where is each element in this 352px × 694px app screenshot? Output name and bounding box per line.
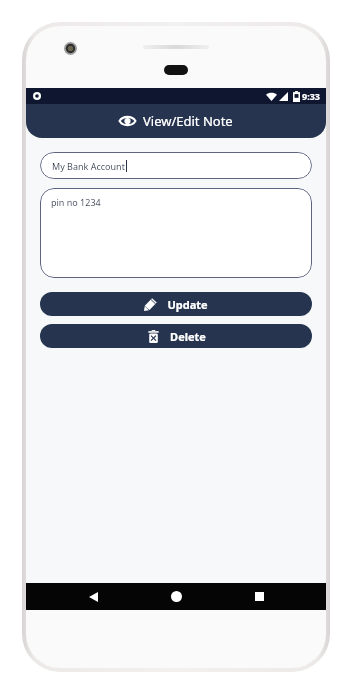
staticText: My Bank Account bbox=[52, 160, 125, 172]
staticText: View/Edit Note bbox=[143, 112, 233, 130]
staticText: Update bbox=[167, 297, 208, 312]
button[interactable]: Delete bbox=[40, 324, 312, 348]
staticText: pin no 1234 bbox=[51, 196, 101, 208]
staticText: 9:33 bbox=[302, 90, 320, 102]
button[interactable]: Home bbox=[160, 583, 192, 610]
staticText: Delete bbox=[170, 329, 206, 344]
button[interactable]: pin no 1234 bbox=[40, 188, 312, 278]
button[interactable]: Back bbox=[77, 583, 109, 610]
button[interactable]: My Bank Account bbox=[40, 152, 312, 179]
button[interactable]: Recent apps bbox=[243, 583, 275, 610]
button[interactable]: Update bbox=[40, 292, 312, 316]
